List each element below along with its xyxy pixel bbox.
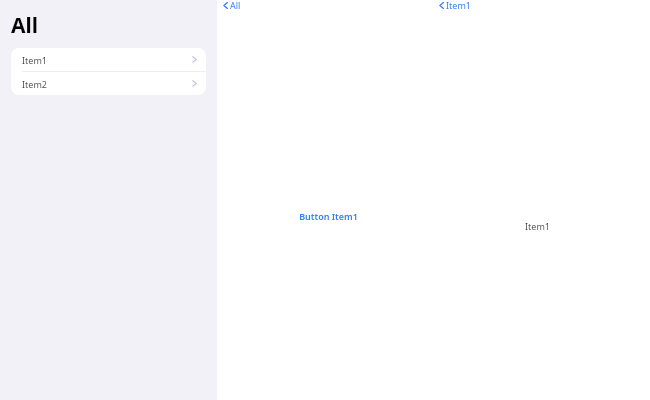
other: Back to All: [223, 0, 241, 11]
staticText: Item1: [446, 0, 471, 11]
staticText: Item1: [22, 54, 192, 66]
staticText: All: [230, 0, 241, 11]
staticText: Button Item1: [299, 210, 358, 222]
other: Back to Item1: [439, 0, 471, 11]
staticText: All: [11, 11, 39, 40]
button[interactable]: Button Item1: [295, 206, 362, 226]
staticText: Item1: [525, 220, 550, 232]
button[interactable]: Back to Item1: [436, 0, 474, 14]
button[interactable]: Back to All: [220, 0, 244, 14]
button[interactable]: Item2: [11, 72, 206, 95]
staticText: Item2: [22, 78, 192, 90]
button[interactable]: Item1: [11, 48, 206, 71]
